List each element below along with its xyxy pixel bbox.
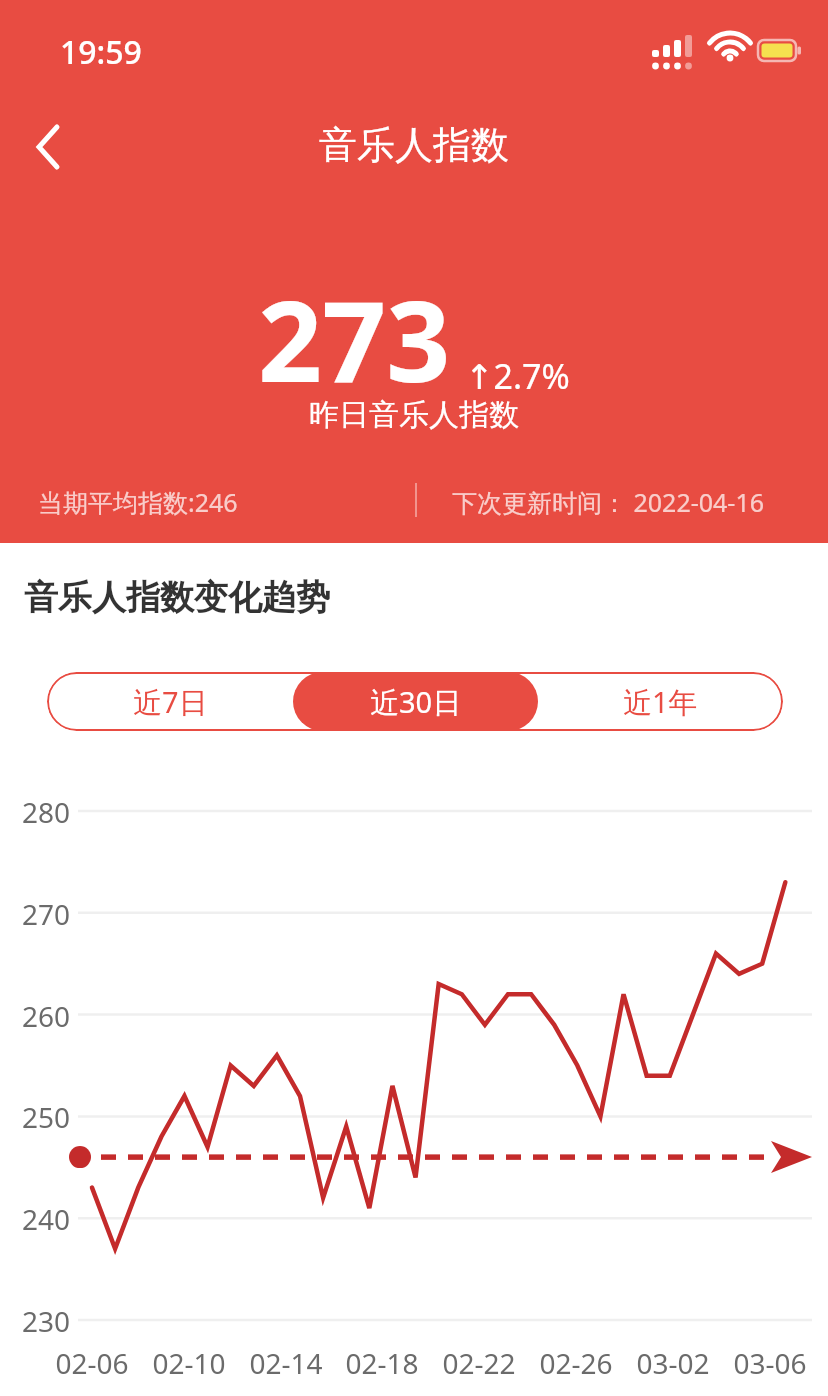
staticText: 音乐人指数	[0, 121, 828, 169]
staticText: 03-02	[623, 1344, 723, 1382]
staticText: ↑2.7%	[465, 353, 570, 399]
button[interactable]: Back	[12, 111, 84, 183]
staticText: 230	[22, 1302, 71, 1340]
staticText: 250	[22, 1098, 71, 1136]
staticText: 02-18	[332, 1344, 432, 1382]
staticText: 02-06	[42, 1344, 142, 1382]
staticText: 280	[22, 793, 71, 831]
staticText: 当期平均指数:246	[38, 485, 238, 519]
staticText: 02-22	[429, 1344, 529, 1382]
staticText: 240	[22, 1200, 71, 1238]
staticText: 近1年	[623, 682, 698, 722]
staticText: 近30日	[370, 682, 462, 722]
staticText: 02-10	[139, 1344, 239, 1382]
staticText: 270	[22, 895, 71, 933]
button[interactable]: 近1年	[538, 672, 783, 731]
staticText: 19:59	[60, 30, 142, 74]
staticText: 昨日音乐人指数	[0, 396, 828, 434]
staticText: 02-14	[236, 1344, 336, 1382]
staticText: 03-06	[720, 1344, 820, 1382]
button[interactable]: 近7日	[47, 672, 293, 731]
staticText: 下次更新时间： 2022-04-16	[452, 485, 765, 519]
staticText: 音乐人指数变化趋势	[24, 576, 330, 619]
staticText: 260	[22, 997, 71, 1035]
button[interactable]: 近30日	[293, 672, 538, 731]
staticText: 近7日	[133, 682, 208, 722]
staticText: 273	[258, 262, 451, 415]
staticText: 02-26	[526, 1344, 626, 1382]
